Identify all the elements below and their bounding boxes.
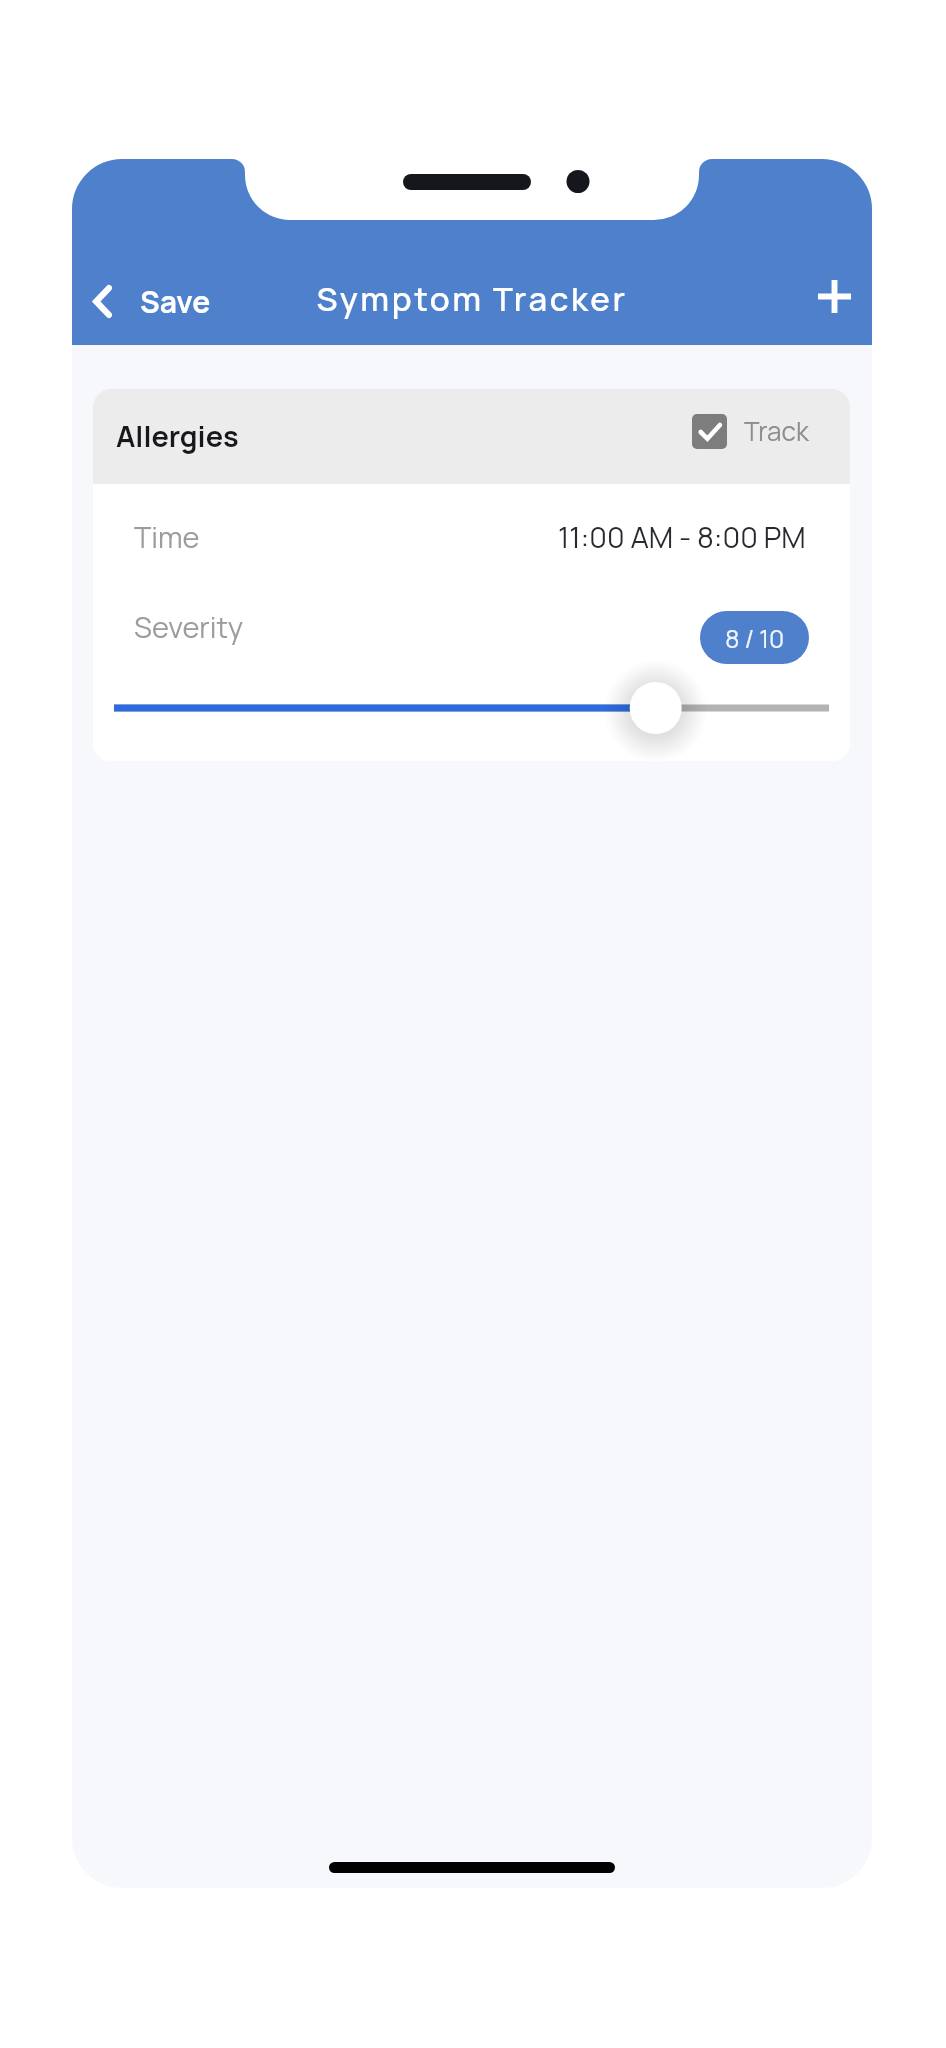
staticText: Save	[140, 281, 211, 322]
staticText: Allergies	[116, 416, 239, 456]
button[interactable]: Allergies	[93, 389, 850, 484]
staticText: Time	[134, 517, 200, 557]
button[interactable]: Time	[93, 484, 850, 575]
button[interactable]: Add	[803, 265, 865, 327]
button[interactable]: Save	[72, 271, 225, 332]
staticText: Severity	[134, 607, 244, 647]
staticText: 11:00 AM - 8:00 PM	[558, 517, 806, 557]
button[interactable]: 8 / 10	[700, 611, 809, 664]
staticText: Symptom Tracker	[316, 276, 628, 321]
staticText: 8 / 10	[725, 621, 785, 655]
staticText: Track	[744, 413, 809, 449]
